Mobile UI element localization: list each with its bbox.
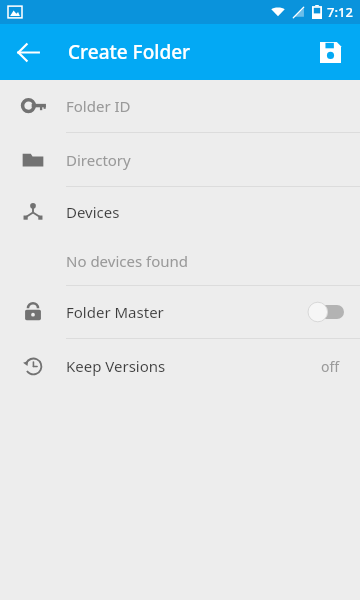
- staticText: No devices found: [66, 251, 188, 271]
- staticText: Directory: [66, 150, 131, 170]
- button[interactable]: Folder Master toggle: [308, 302, 344, 322]
- button[interactable]: Directory: [0, 133, 360, 186]
- staticText: Devices: [66, 202, 120, 222]
- staticText: off: [321, 357, 340, 376]
- button[interactable]: Devices: [0, 187, 360, 285]
- staticText: Create Folder: [68, 39, 191, 65]
- button[interactable]: Back: [4, 28, 52, 76]
- button[interactable]: Folder Master: [0, 286, 360, 338]
- staticText: Folder Master: [66, 302, 308, 322]
- staticText: 7:12: [327, 3, 353, 21]
- button[interactable]: Folder ID: [0, 80, 360, 132]
- staticText: Folder ID: [66, 96, 131, 116]
- staticText: Keep Versions: [66, 356, 321, 376]
- button[interactable]: Save: [306, 28, 354, 76]
- button[interactable]: Keep Versions: [0, 339, 360, 393]
